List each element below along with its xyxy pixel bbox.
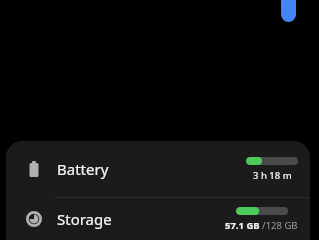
staticText: Storage <box>57 209 112 229</box>
staticText: 3 h 18 m <box>253 169 292 182</box>
button[interactable]: Battery <box>6 141 310 197</box>
other: Battery <box>24 159 44 179</box>
staticText: Battery <box>57 159 109 179</box>
staticText: 57.1 GB /128 GB <box>225 219 298 232</box>
button[interactable]: Storage <box>6 198 310 240</box>
other: Storage <box>24 209 44 229</box>
